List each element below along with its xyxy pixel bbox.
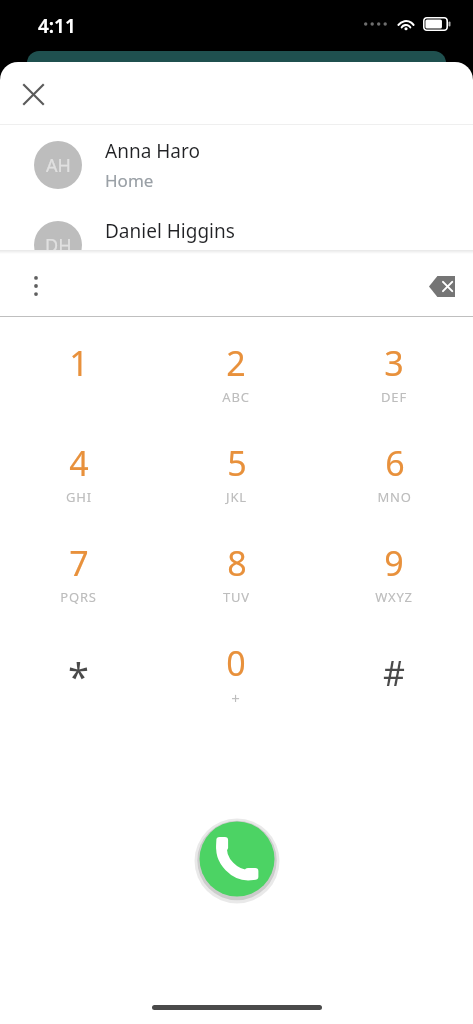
staticText: JKL xyxy=(226,488,247,506)
staticText: Home xyxy=(105,169,154,192)
staticText: + xyxy=(231,688,241,708)
button[interactable]: 0 xyxy=(157,636,315,736)
button[interactable]: Call xyxy=(194,816,280,902)
staticText: Daniel Higgins xyxy=(105,218,235,244)
button[interactable]: 3 xyxy=(315,336,473,436)
staticText: 2 xyxy=(226,340,246,386)
button[interactable]: 7 xyxy=(0,536,157,636)
staticText: 3 xyxy=(384,340,404,386)
staticText: 4:11 xyxy=(38,13,76,39)
staticText: 4 xyxy=(69,440,89,486)
button[interactable]: 5 xyxy=(157,436,315,536)
button[interactable]: Close xyxy=(10,71,56,117)
staticText: TUV xyxy=(223,588,250,606)
staticText: 6 xyxy=(385,440,405,486)
button[interactable]: 9 xyxy=(315,536,473,636)
button[interactable]: 4 xyxy=(0,436,157,536)
staticText: DH xyxy=(45,233,72,258)
staticText: WXYZ xyxy=(375,588,413,606)
button[interactable]: DH xyxy=(0,205,473,285)
staticText: * xyxy=(68,650,89,702)
button[interactable]: # xyxy=(315,636,473,736)
staticText: Anna Haro xyxy=(105,138,200,164)
staticText: GHI xyxy=(66,488,92,506)
button[interactable]: 6 xyxy=(315,436,473,536)
button[interactable]: 1 xyxy=(0,336,157,436)
staticText: 7 xyxy=(69,540,89,586)
staticText: 8 xyxy=(227,540,247,586)
button[interactable]: More options xyxy=(13,263,59,309)
staticText: 5 xyxy=(227,440,247,486)
staticText: DEF xyxy=(381,388,407,406)
button[interactable]: AH xyxy=(0,125,473,205)
staticText: PQRS xyxy=(60,588,97,606)
button[interactable]: 8 xyxy=(157,536,315,636)
staticText: ABC xyxy=(222,388,250,406)
staticText: 1 xyxy=(69,340,89,386)
staticText: MNO xyxy=(377,488,412,506)
staticText: # xyxy=(383,650,405,696)
staticText: 9 xyxy=(384,540,404,586)
staticText: 0 xyxy=(226,640,246,686)
button[interactable]: 2 xyxy=(157,336,315,436)
staticText: Mobile xyxy=(105,249,160,272)
button[interactable]: * xyxy=(0,636,157,736)
button[interactable]: Backspace xyxy=(420,263,466,309)
staticText: AH xyxy=(46,153,71,178)
